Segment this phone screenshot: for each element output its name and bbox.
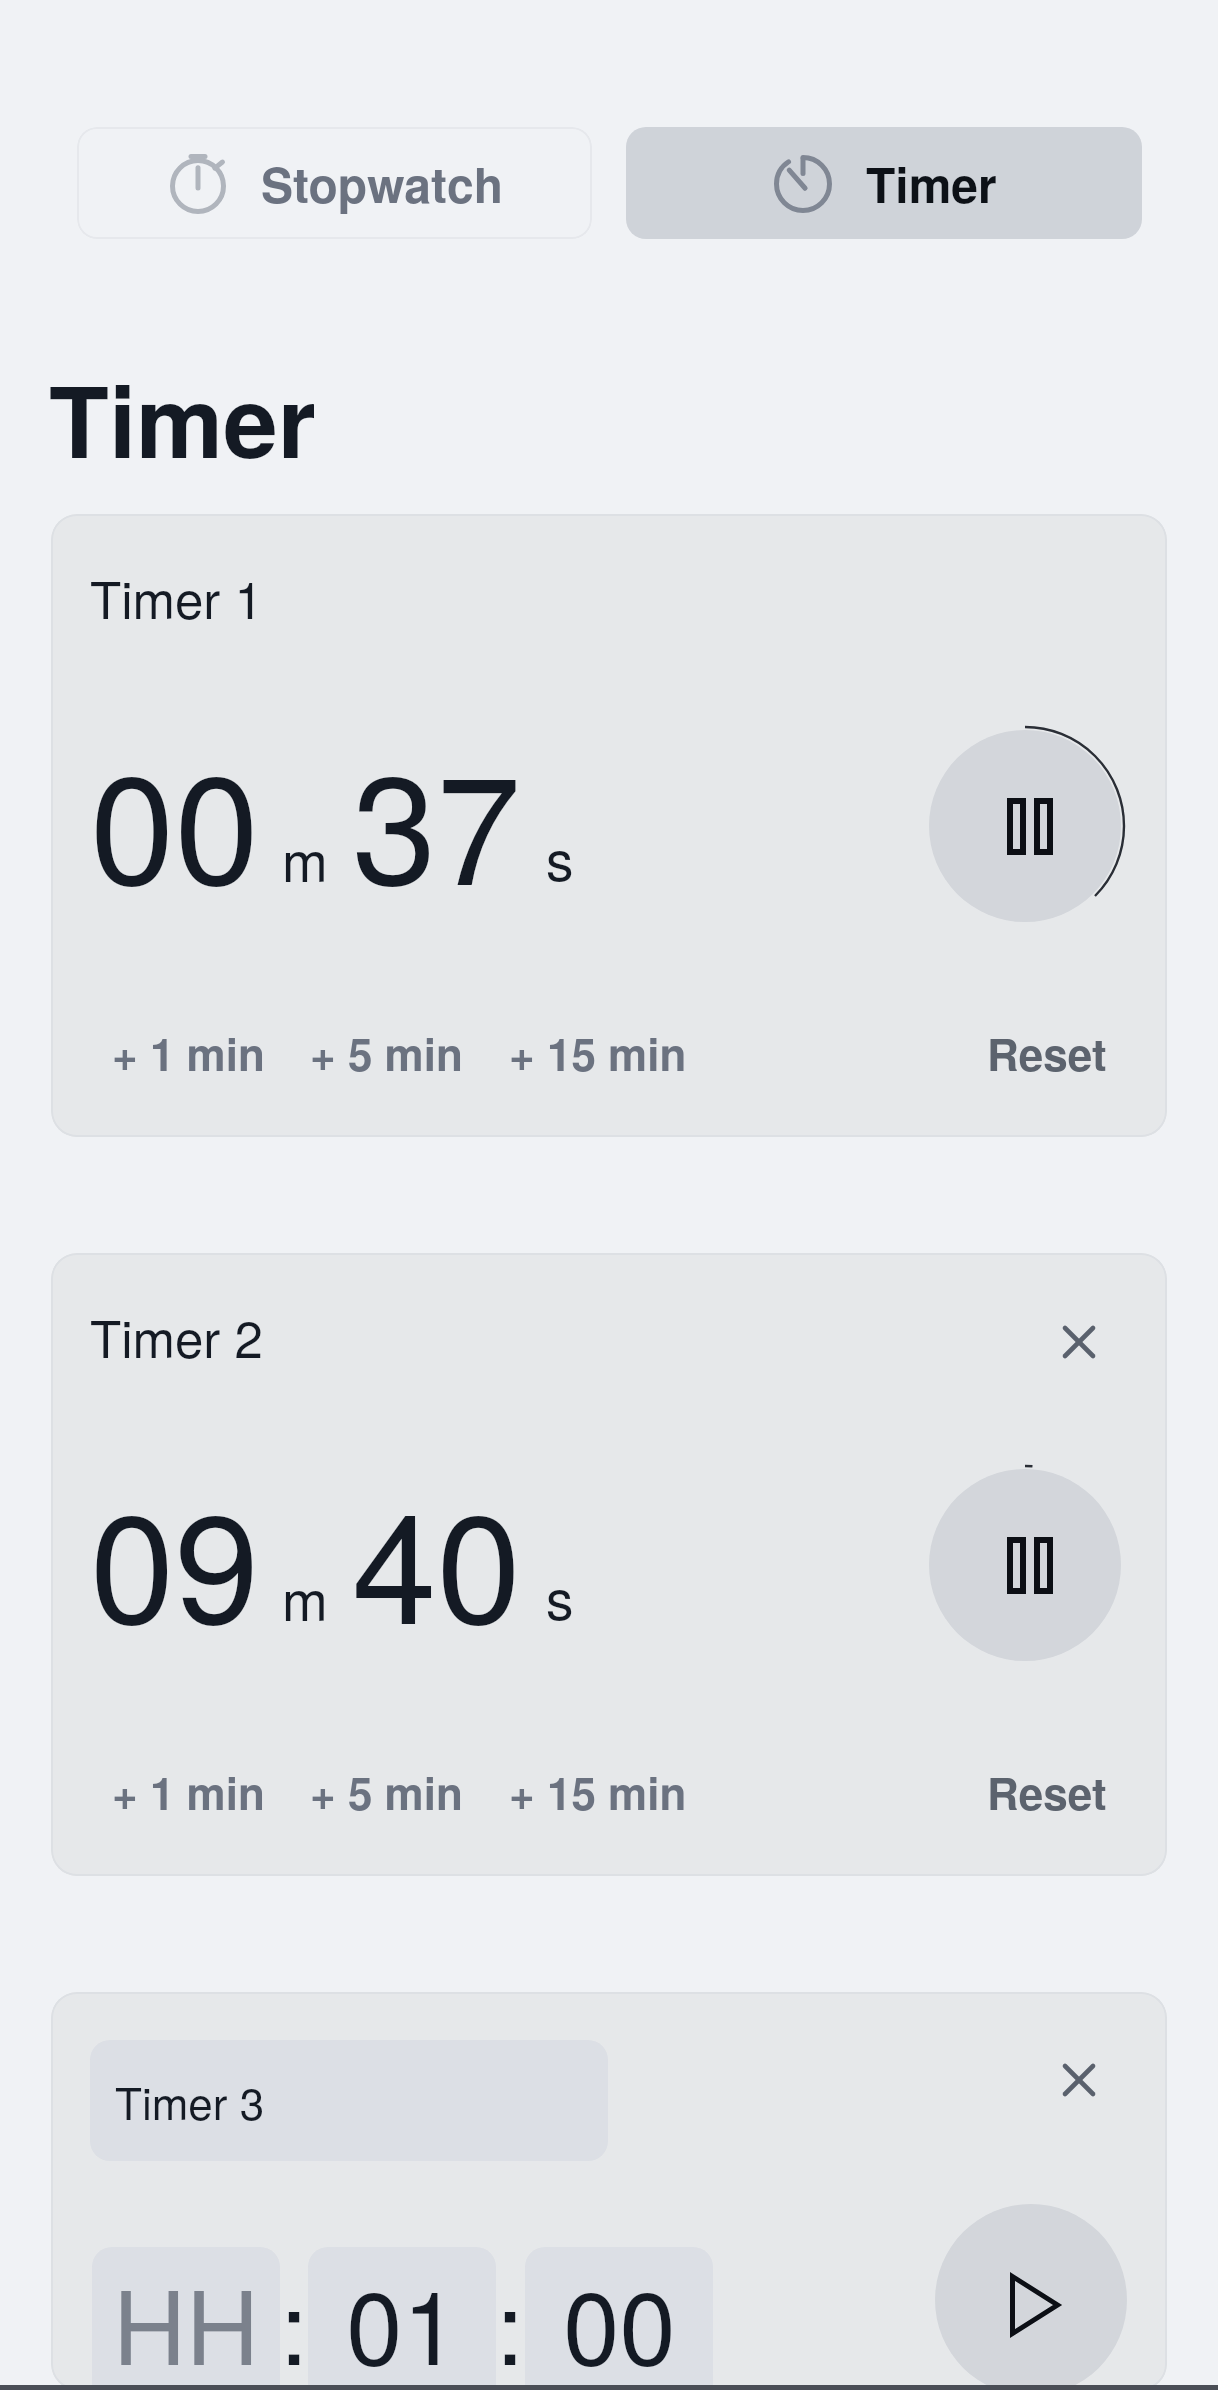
- staticText: + 5 min: [310, 1760, 463, 1823]
- button[interactable]: Delete timer: [1039, 1302, 1119, 1382]
- button[interactable]: Delete timer: [1039, 2040, 1119, 2120]
- staticText: 09: [90, 1450, 260, 1668]
- staticText: Timer: [49, 348, 316, 488]
- button[interactable]: Stopwatch: [77, 127, 592, 239]
- button[interactable]: + 1 min: [104, 1750, 273, 1833]
- staticText: 37: [352, 711, 522, 929]
- staticText: Reset: [987, 1760, 1107, 1823]
- staticText: Stopwatch: [261, 149, 503, 218]
- staticText: + 1 min: [112, 1021, 265, 1084]
- staticText: + 15 min: [509, 1760, 687, 1823]
- button[interactable]: + 5 min: [302, 1750, 471, 1833]
- staticText: :: [280, 2249, 308, 2390]
- staticText: 00: [90, 711, 260, 929]
- staticText: HH: [113, 2249, 259, 2390]
- staticText: 01: [346, 2249, 459, 2390]
- staticText: s: [546, 1557, 574, 1636]
- staticText: Timer 3: [115, 2069, 265, 2132]
- staticText: s: [546, 818, 574, 897]
- button[interactable]: Timer 3: [90, 2040, 608, 2161]
- staticText: + 1 min: [112, 1760, 265, 1823]
- staticText: Timer 1: [90, 560, 263, 633]
- button[interactable]: + 1 min: [104, 1011, 273, 1094]
- staticText: Timer: [866, 149, 997, 218]
- staticText: 40: [352, 1450, 522, 1668]
- button[interactable]: Reset: [979, 1750, 1115, 1833]
- button[interactable]: Pause: [923, 724, 1127, 928]
- staticText: m: [282, 819, 328, 898]
- staticText: + 15 min: [509, 1021, 687, 1084]
- button[interactable]: 01: [308, 2247, 496, 2390]
- button[interactable]: Start: [929, 2198, 1133, 2390]
- button[interactable]: + 15 min: [501, 1011, 695, 1094]
- button[interactable]: 00: [525, 2247, 713, 2390]
- staticText: 00: [563, 2249, 676, 2390]
- staticText: + 5 min: [310, 1021, 463, 1084]
- staticText: :: [496, 2249, 525, 2390]
- button[interactable]: + 5 min: [302, 1011, 471, 1094]
- staticText: Timer 2: [90, 1299, 263, 1372]
- button[interactable]: + 15 min: [501, 1750, 695, 1833]
- button[interactable]: HH: [92, 2247, 280, 2390]
- button[interactable]: Pause: [923, 1463, 1127, 1667]
- button[interactable]: Timer: [626, 127, 1142, 239]
- button[interactable]: Reset: [979, 1011, 1115, 1094]
- staticText: m: [282, 1558, 328, 1637]
- staticText: Reset: [987, 1021, 1107, 1084]
